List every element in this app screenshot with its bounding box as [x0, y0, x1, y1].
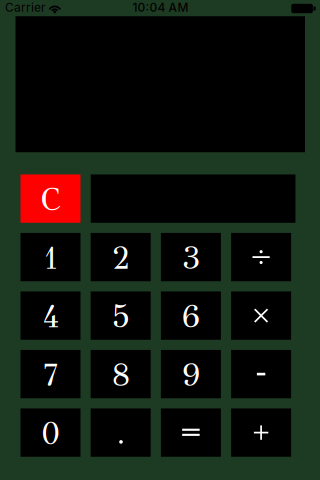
button[interactable]: C — [20, 174, 80, 223]
button[interactable]: 7 — [20, 350, 80, 398]
staticText: 7 — [43, 355, 58, 395]
button[interactable]: Minus — [231, 350, 291, 398]
staticText: 3 — [182, 238, 200, 278]
button[interactable]: Equals — [161, 408, 221, 457]
staticText: C — [41, 180, 60, 219]
button[interactable]: Decimal point — [91, 408, 151, 457]
button[interactable]: 0 — [20, 408, 80, 457]
staticText: 8 — [112, 355, 130, 395]
staticText: 6 — [181, 297, 200, 336]
button[interactable]: 2 — [91, 233, 151, 281]
button[interactable]: 4 — [20, 291, 80, 340]
staticText: 10:04 AM — [132, 0, 188, 15]
button[interactable]: 8 — [91, 350, 151, 398]
staticText: 1 — [43, 238, 58, 278]
staticText: 9 — [182, 355, 200, 395]
button[interactable]: 1 — [20, 233, 80, 281]
staticText: 2 — [112, 238, 130, 278]
staticText: 5 — [112, 297, 130, 336]
staticText: 0 — [41, 414, 59, 453]
staticText: Carrier — [5, 0, 46, 15]
button[interactable]: 3 — [161, 233, 221, 281]
button[interactable]: Multiply — [231, 291, 291, 340]
staticText: 4 — [42, 297, 59, 336]
button[interactable]: 6 — [161, 291, 221, 340]
button[interactable]: Plus — [231, 408, 291, 457]
button[interactable]: 5 — [91, 291, 151, 340]
button[interactable]: 9 — [161, 350, 221, 398]
button[interactable]: Divide — [231, 233, 291, 281]
